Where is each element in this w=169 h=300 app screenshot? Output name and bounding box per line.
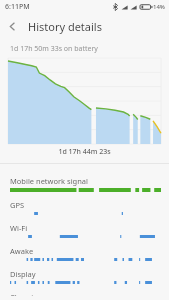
staticText: Display bbox=[10, 269, 36, 279]
button[interactable]: Display bbox=[0, 265, 169, 288]
button[interactable]: Charging bbox=[0, 288, 169, 300]
button[interactable]: Awake bbox=[0, 242, 169, 265]
staticText: 1d 17h 50m 33s on battery bbox=[10, 44, 98, 54]
staticText: 6:11PM bbox=[5, 2, 30, 12]
staticText: 1d 17h 44m 23s bbox=[0, 147, 169, 157]
staticText: 14% bbox=[153, 3, 165, 11]
button[interactable]: GPS bbox=[0, 196, 169, 219]
staticText: Mobile network signal bbox=[10, 176, 88, 186]
staticText: Charging bbox=[10, 292, 43, 296]
staticText: History details bbox=[28, 19, 102, 34]
button[interactable]: Back bbox=[0, 14, 24, 38]
staticText: Awake bbox=[10, 246, 34, 256]
staticText: Wi-Fi bbox=[10, 223, 28, 233]
button[interactable]: Wi-Fi bbox=[0, 219, 169, 242]
staticText: GPS bbox=[10, 200, 25, 210]
button[interactable]: Mobile network signal bbox=[0, 172, 169, 196]
